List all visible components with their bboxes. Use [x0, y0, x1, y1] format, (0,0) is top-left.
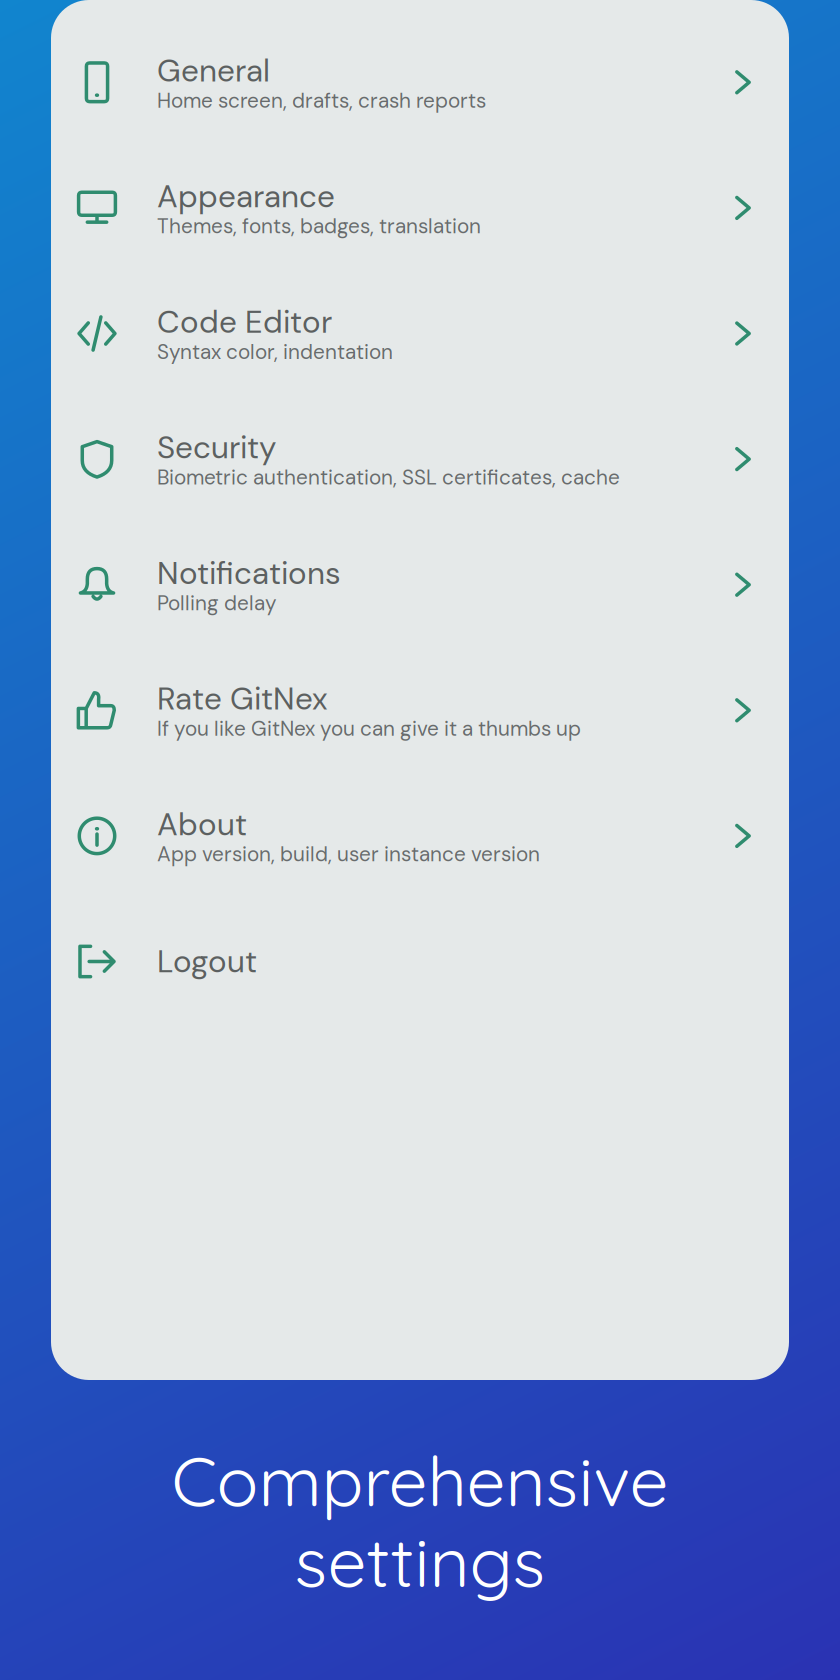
button[interactable]: Appearance: [51, 145, 789, 271]
staticText: Themes, fonts, badges, translation: [157, 213, 481, 240]
staticText: Logout: [157, 941, 257, 982]
staticText: Code Editor: [157, 302, 332, 342]
staticText: Home screen, drafts, crash reports: [157, 87, 486, 114]
staticText: If you like GitNex you can give it a thu…: [157, 715, 581, 742]
staticText: About: [157, 804, 247, 845]
staticText: Comprehensive: [171, 1437, 668, 1524]
button[interactable]: Security: [51, 396, 789, 522]
button[interactable]: About: [51, 773, 789, 899]
staticText: Biometric authentication, SSL certificat…: [157, 464, 620, 491]
staticText: Security: [157, 427, 276, 468]
staticText: Appearance: [157, 176, 335, 217]
staticText: General: [157, 50, 270, 91]
button[interactable]: Code Editor: [51, 271, 789, 396]
button[interactable]: General: [51, 19, 789, 145]
button[interactable]: Logout: [51, 899, 789, 1024]
staticText: Polling delay: [157, 590, 276, 616]
staticText: Rate GitNex: [157, 678, 328, 719]
staticText: Notifications: [157, 553, 341, 594]
staticText: settings: [294, 1518, 545, 1604]
staticText: App version, build, user instance versio…: [157, 841, 540, 868]
button[interactable]: Notifications: [51, 522, 789, 647]
staticText: Syntax color, indentation: [157, 338, 393, 365]
button[interactable]: Rate GitNex: [51, 647, 789, 773]
